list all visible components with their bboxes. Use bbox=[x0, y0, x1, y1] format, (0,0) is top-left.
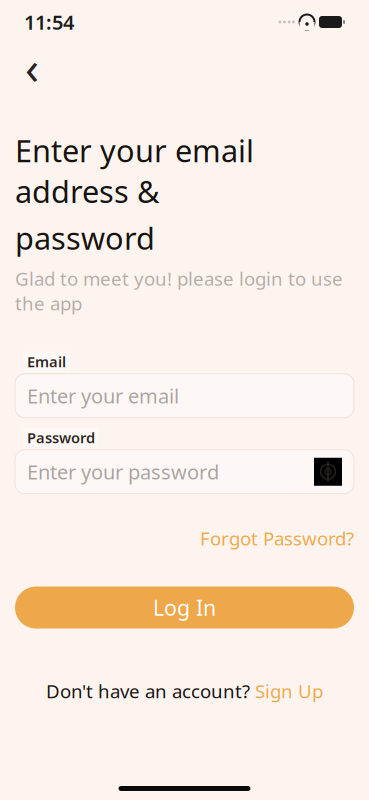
staticText: Sign Up bbox=[255, 678, 323, 703]
button[interactable]: Back bbox=[12, 47, 52, 87]
staticText: Forgot Password? bbox=[200, 526, 354, 551]
staticText: password bbox=[15, 217, 155, 258]
button[interactable]: Show password bbox=[314, 458, 342, 486]
staticText: Enter your password bbox=[27, 458, 219, 485]
staticText: ‹ bbox=[25, 37, 39, 97]
staticText: Enter your email bbox=[27, 382, 179, 409]
staticText: Log In bbox=[153, 593, 216, 622]
button[interactable]: Forgot Password? bbox=[200, 520, 354, 557]
staticText: Password bbox=[27, 428, 95, 447]
staticText: Don't have an account? bbox=[46, 678, 250, 703]
button[interactable]: Log In bbox=[15, 586, 354, 628]
staticText: Enter your email address & bbox=[15, 130, 254, 211]
button[interactable]: Don't have an account? bbox=[15, 670, 354, 711]
staticText: Glad to meet you! please login to use th… bbox=[15, 266, 343, 316]
staticText: Email bbox=[27, 352, 66, 371]
staticText: 11:54 bbox=[24, 9, 74, 35]
